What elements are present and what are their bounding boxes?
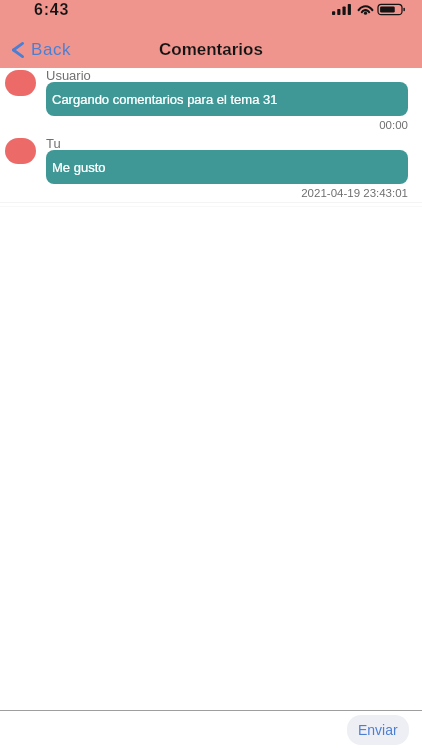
- other: Back: [12, 42, 24, 58]
- staticText: Me gusto: [52, 160, 106, 175]
- button[interactable]: Back: [0, 40, 82, 59]
- staticText: Tu: [46, 136, 61, 148]
- staticText: Enviar: [358, 722, 398, 738]
- staticText: Usuario: [46, 68, 91, 80]
- staticText: 2021-04-19 23:43:01: [0, 187, 408, 200]
- staticText: 6:43: [34, 1, 70, 19]
- other: Battery: [378, 4, 405, 15]
- staticText: Comentarios: [159, 40, 263, 59]
- button[interactable]: Enviar: [347, 715, 409, 745]
- other: Wi-Fi: [357, 4, 374, 15]
- staticText: 00:00: [0, 119, 408, 132]
- staticText: Cargando comentarios para el tema 31: [52, 92, 278, 107]
- staticText: Back: [31, 40, 72, 59]
